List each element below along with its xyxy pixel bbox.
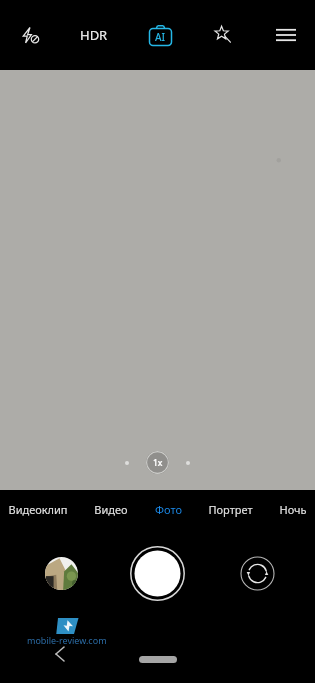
staticText: mobile-review.com bbox=[27, 634, 107, 646]
button[interactable]: 1x bbox=[146, 451, 169, 474]
button[interactable]: Zoom in bbox=[177, 452, 199, 474]
button[interactable]: Switch camera bbox=[240, 556, 275, 591]
staticText: AI bbox=[155, 30, 166, 44]
staticText: Портрет bbox=[208, 502, 253, 517]
button[interactable]: Zoom out bbox=[116, 452, 138, 474]
button[interactable]: Видеоклип bbox=[8, 493, 68, 525]
staticText: Видеоклип bbox=[8, 502, 68, 517]
button[interactable]: AI scene detection bbox=[139, 14, 181, 56]
button[interactable]: Портрет bbox=[208, 493, 253, 525]
staticText: HDR bbox=[80, 26, 108, 44]
button[interactable]: Фото bbox=[155, 493, 182, 525]
staticText: Видео bbox=[94, 502, 128, 517]
button[interactable]: Видео bbox=[94, 493, 128, 525]
button[interactable]: HDR bbox=[71, 15, 117, 55]
staticText: Фото bbox=[155, 502, 182, 517]
staticText: Ночь bbox=[279, 502, 307, 517]
button[interactable]: Beauty filter bbox=[202, 14, 244, 56]
button[interactable]: Shutter bbox=[130, 546, 185, 601]
staticText: 1x bbox=[153, 457, 163, 469]
button[interactable]: Menu bbox=[265, 14, 307, 56]
button[interactable]: Back bbox=[45, 639, 75, 669]
button[interactable]: Flash off bbox=[8, 14, 50, 56]
button[interactable]: Home bbox=[135, 652, 181, 666]
button[interactable]: Gallery bbox=[45, 557, 78, 590]
button[interactable]: Ночь bbox=[279, 493, 307, 525]
